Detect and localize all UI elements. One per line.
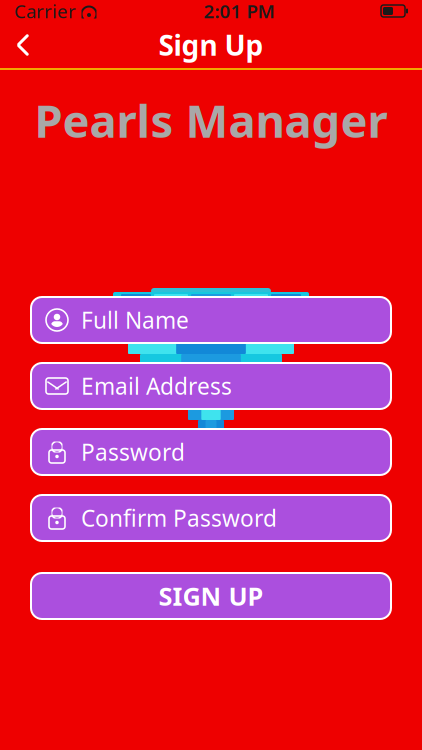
staticText: Carrier xyxy=(14,0,76,23)
staticText: Sign Up xyxy=(158,26,263,64)
button[interactable]: Email Address xyxy=(31,363,391,409)
button[interactable]: Password xyxy=(31,429,391,475)
staticText: SIGN UP xyxy=(158,579,263,613)
button[interactable]: Confirm Password xyxy=(31,495,391,541)
staticText: 2:01 PM xyxy=(203,0,274,23)
staticText: Confirm Password xyxy=(81,503,277,533)
staticText: Pearls Manager xyxy=(34,90,387,150)
button[interactable]: Full Name xyxy=(31,297,391,343)
button[interactable]: Back xyxy=(0,23,46,67)
button[interactable]: SIGN UP xyxy=(31,573,391,619)
staticText: Full Name xyxy=(81,305,189,335)
staticText: Email Address xyxy=(81,371,232,401)
staticText: Password xyxy=(81,437,185,467)
